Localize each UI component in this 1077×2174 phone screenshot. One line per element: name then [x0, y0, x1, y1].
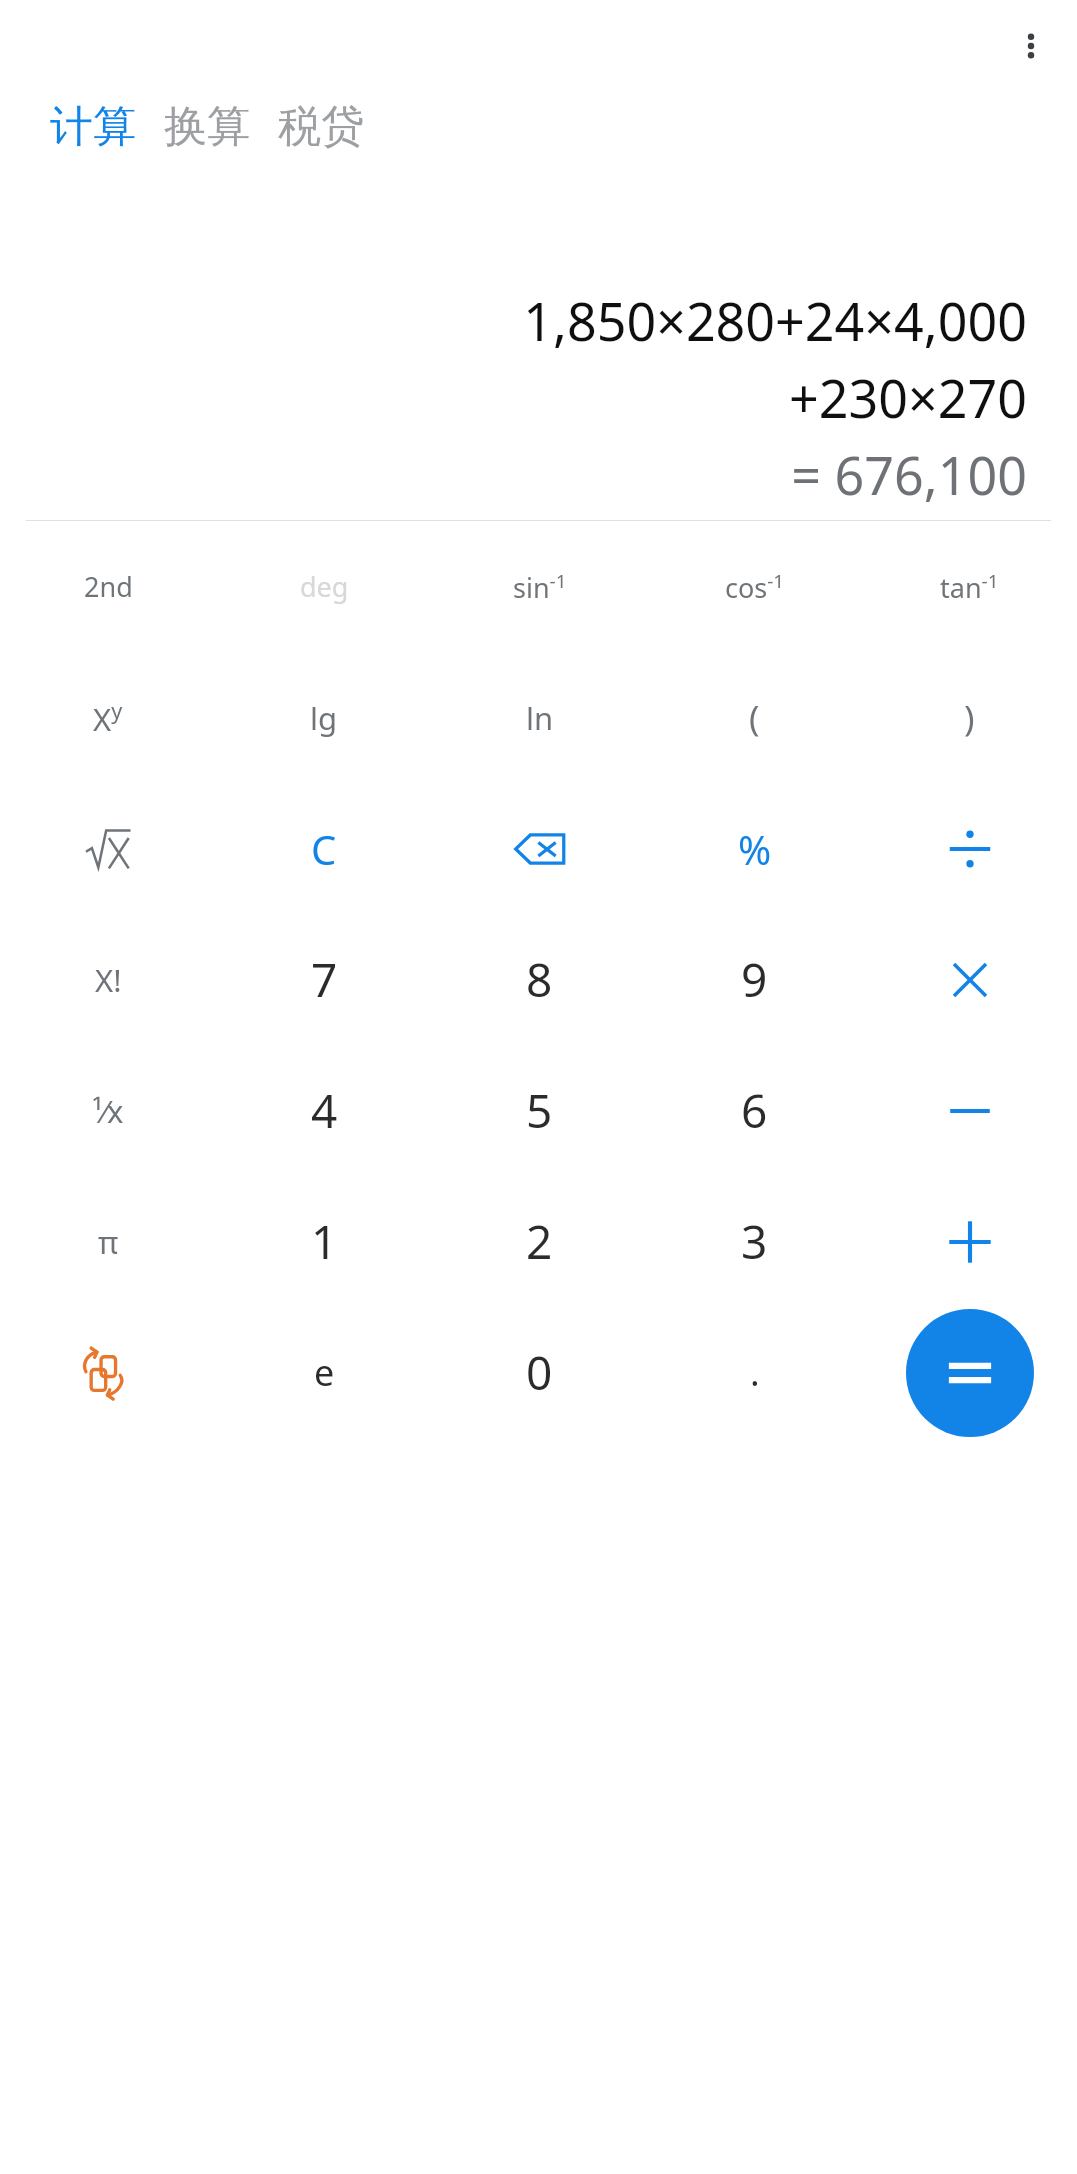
button[interactable]: 7 [216, 914, 432, 1045]
button[interactable]: 6 [647, 1045, 862, 1176]
staticText: 3 [741, 1210, 768, 1273]
button[interactable]: More options [999, 14, 1063, 78]
staticText: 1,850×280+24×4,000 [523, 285, 1027, 356]
staticText: 5 [526, 1079, 553, 1142]
staticText: 0 [526, 1341, 553, 1404]
button[interactable]: Minus [862, 1045, 1077, 1176]
staticText: sin-1 [513, 568, 567, 606]
button[interactable]: % [647, 783, 862, 914]
button[interactable]: tan-1 [862, 521, 1077, 652]
staticText: tan-1 [940, 568, 999, 606]
button[interactable]: X! [0, 914, 216, 1045]
staticText: 4 [311, 1079, 338, 1142]
staticText: Xy [93, 696, 123, 740]
button[interactable]: . [647, 1307, 862, 1438]
staticText: ( [749, 694, 760, 742]
staticText: 1 [311, 1210, 338, 1273]
button[interactable]: 8 [432, 914, 647, 1045]
staticText: 7 [311, 948, 338, 1011]
button[interactable]: lg [216, 652, 432, 783]
button[interactable]: 换算 [164, 92, 250, 162]
staticText: X! [95, 959, 122, 1001]
button[interactable]: ln [432, 652, 647, 783]
button[interactable]: 4 [216, 1045, 432, 1176]
staticText: 8 [526, 948, 553, 1011]
button[interactable]: π [0, 1176, 216, 1307]
button[interactable]: Convert units [0, 1307, 216, 1438]
button[interactable]: 计算 [50, 92, 136, 162]
staticText: C [311, 822, 337, 876]
staticText: lg [310, 697, 338, 739]
button[interactable]: ) [862, 652, 1077, 783]
button[interactable]: 0 [432, 1307, 647, 1438]
button[interactable]: Equals [862, 1307, 1077, 1438]
button[interactable]: Divide [862, 783, 1077, 914]
staticText: 2nd [84, 568, 133, 605]
staticText: 9 [741, 948, 768, 1011]
button[interactable]: deg [216, 521, 432, 652]
button[interactable]: ( [647, 652, 862, 783]
button[interactable]: 3 [647, 1176, 862, 1307]
staticText: e [314, 1348, 335, 1397]
button[interactable]: sin-1 [432, 521, 647, 652]
staticText: = 676,100 [791, 439, 1027, 510]
button[interactable]: cos-1 [647, 521, 862, 652]
button[interactable]: Xy [0, 652, 216, 783]
button[interactable]: 5 [432, 1045, 647, 1176]
staticText: ) [964, 694, 975, 742]
staticText: 2 [526, 1210, 553, 1273]
staticText: 换算 [164, 100, 250, 154]
button[interactable]: Backspace [432, 783, 647, 914]
button[interactable]: e [216, 1307, 432, 1438]
staticText: deg [300, 568, 349, 605]
button[interactable]: 2nd [0, 521, 216, 652]
staticText: . [750, 1348, 760, 1397]
button[interactable]: ¹⁄x [0, 1045, 216, 1176]
button[interactable]: 2 [432, 1176, 647, 1307]
staticText: cos-1 [725, 568, 785, 606]
button[interactable]: Plus [862, 1176, 1077, 1307]
button[interactable]: Square root [0, 783, 216, 914]
button[interactable]: 1 [216, 1176, 432, 1307]
staticText: π [98, 1221, 119, 1263]
staticText: 6 [741, 1079, 768, 1142]
staticText: ln [526, 697, 554, 739]
staticText: ¹⁄x [92, 1090, 124, 1132]
staticText: % [738, 822, 772, 876]
staticText: 计算 [50, 100, 136, 154]
button[interactable]: Multiply [862, 914, 1077, 1045]
button[interactable]: 税贷 [278, 92, 364, 162]
staticText: 税贷 [278, 100, 364, 154]
button[interactable]: C [216, 783, 432, 914]
button[interactable]: 9 [647, 914, 862, 1045]
staticText: +230×270 [789, 362, 1027, 433]
